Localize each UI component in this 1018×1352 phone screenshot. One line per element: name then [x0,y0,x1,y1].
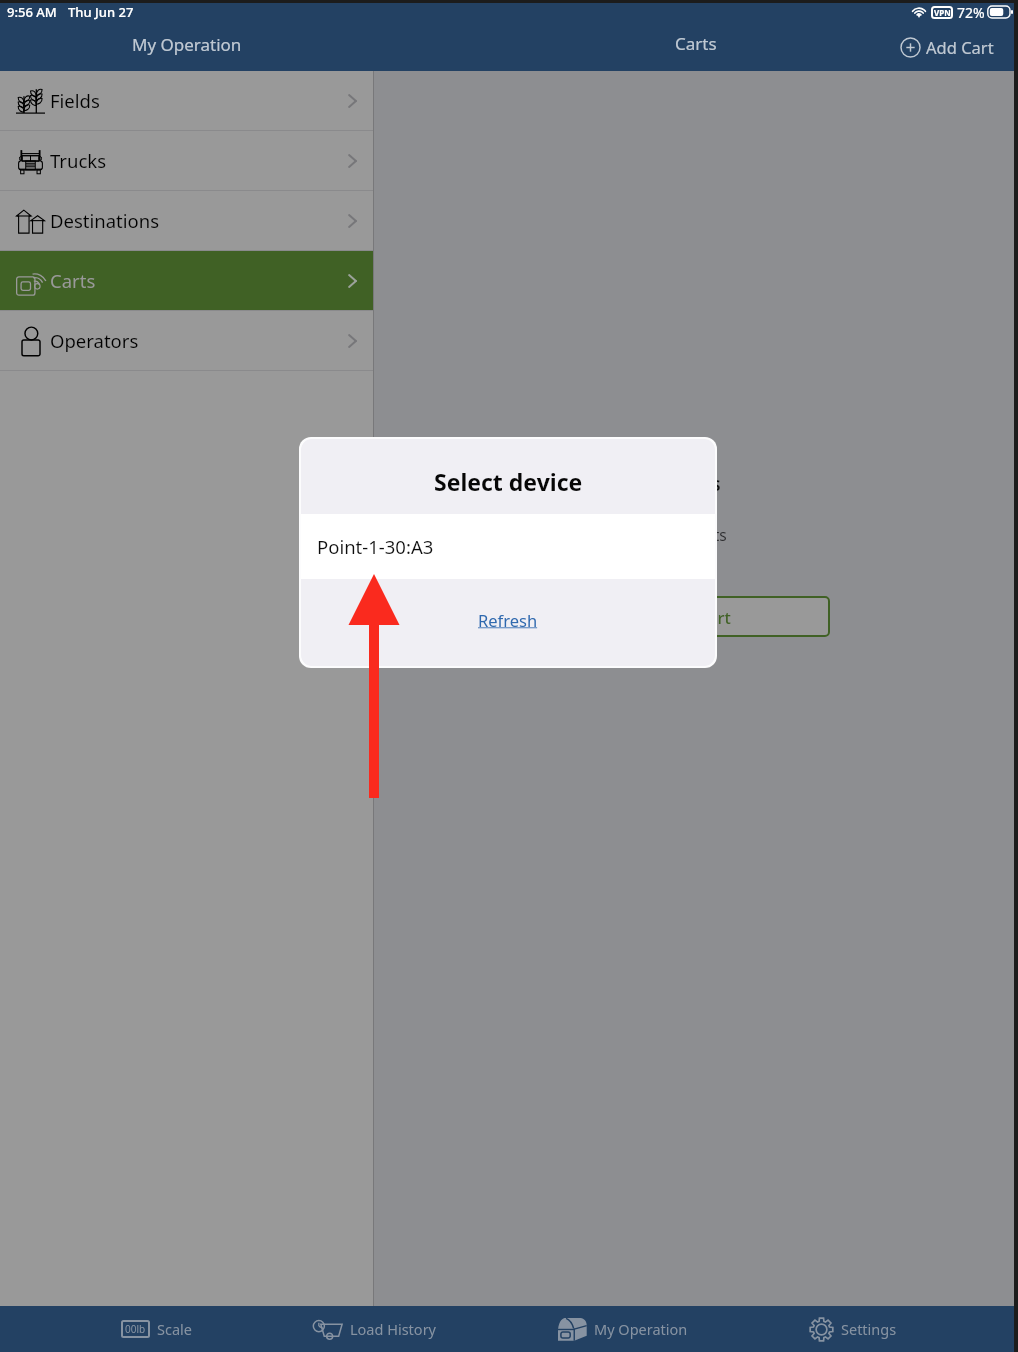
button[interactable]: Operators [0,311,373,371]
button[interactable]: Add Cart [898,33,996,61]
button[interactable]: Point-1-30:A3 [301,514,715,579]
staticText: Carts [672,471,721,497]
button[interactable]: Carts [0,251,373,311]
staticText: 72% [957,3,985,22]
button[interactable]: Trucks [0,131,373,191]
button[interactable]: Settings [809,1306,897,1352]
staticText: Load History [350,1319,437,1339]
staticText: Carts [675,32,717,55]
staticText: VPN [934,7,951,18]
staticText: Destinations [50,208,160,233]
button[interactable]: Destinations [0,191,373,251]
staticText: Carts [50,268,96,293]
staticText: Add Cart [926,36,994,58]
staticText: Point-1-30:A3 [317,534,434,559]
button[interactable]: My Operation [558,1306,688,1352]
staticText: Scale [157,1319,192,1339]
staticText: Thu Jun 27 [68,3,134,21]
staticText: Add Cart [662,606,731,628]
staticText: Operators [50,328,139,353]
staticText: 9:56 AM [7,3,57,21]
button[interactable]: Refresh [301,579,715,666]
staticText: Settings [841,1319,897,1339]
button[interactable]: 00lb [121,1306,192,1352]
staticText: Trucks [50,148,107,173]
staticText: My Operation [132,33,242,56]
button[interactable]: Add Cart [562,596,830,637]
button[interactable]: Load History [313,1306,437,1352]
button[interactable]: Fields [0,71,373,131]
staticText: Refresh [478,609,538,631]
staticText: No carts [666,524,727,545]
staticText: 00lb [125,1322,146,1336]
staticText: Select device [434,466,583,497]
staticText: My Operation [594,1319,688,1339]
staticText: Fields [50,88,100,113]
